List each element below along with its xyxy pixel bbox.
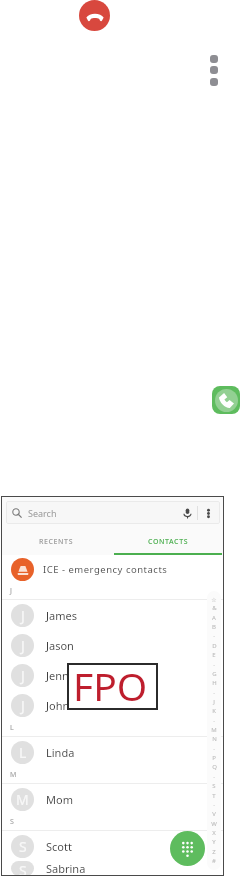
staticText: ·: [213, 745, 215, 753]
staticText: &: [212, 604, 217, 612]
staticText: ·: [213, 801, 215, 809]
button[interactable]: M: [1, 784, 224, 814]
staticText: ·: [213, 661, 215, 669]
staticText: M: [10, 770, 17, 780]
staticText: Search: [28, 507, 57, 519]
button[interactable]: Phone app: [212, 386, 240, 414]
staticText: P: [212, 754, 216, 762]
staticText: ·: [213, 689, 215, 697]
staticText: Y: [212, 838, 216, 846]
button[interactable]: CONTACTS: [112, 529, 224, 555]
button[interactable]: RECENTS: [1, 529, 112, 555]
staticText: John: [46, 698, 70, 713]
staticText: L: [19, 743, 27, 762]
staticText: James: [46, 608, 77, 623]
staticText: W: [211, 820, 217, 828]
staticText: CONTACTS: [148, 537, 189, 547]
staticText: J: [21, 696, 25, 715]
staticText: Sabrina: [46, 861, 86, 876]
staticText: Q: [212, 763, 217, 771]
staticText: E: [212, 651, 216, 659]
staticText: S: [212, 782, 216, 790]
button[interactable]: ICE - emergency contacts: [1, 555, 224, 583]
button[interactable]: More options: [198, 503, 218, 523]
button[interactable]: Search: [6, 501, 220, 524]
staticText: J: [21, 666, 25, 685]
staticText: Linda: [46, 745, 75, 760]
staticText: L: [10, 723, 14, 733]
staticText: Scott: [46, 839, 72, 854]
staticText: V: [212, 810, 216, 818]
staticText: A: [212, 614, 216, 622]
button[interactable]: S: [1, 831, 224, 861]
staticText: #: [212, 857, 216, 865]
button[interactable]: J: [1, 690, 224, 720]
staticText: J: [10, 586, 12, 596]
staticText: Z: [212, 848, 216, 856]
button[interactable]: J: [1, 660, 224, 690]
button[interactable]: Voice search: [177, 503, 197, 523]
button[interactable]: Alphabet index: [207, 591, 221, 870]
staticText: J: [213, 698, 215, 706]
staticText: Jennifer: [46, 668, 87, 683]
staticText: ·: [213, 632, 215, 640]
staticText: N: [212, 735, 217, 743]
staticText: J: [21, 636, 25, 655]
staticText: D: [212, 642, 217, 650]
button[interactable]: L: [1, 737, 224, 767]
staticText: X: [212, 829, 216, 837]
staticText: Mom: [46, 792, 73, 807]
staticText: S: [19, 837, 27, 856]
button[interactable]: J: [1, 630, 224, 660]
staticText: RECENTS: [39, 537, 74, 547]
button[interactable]: More options: [198, 44, 230, 76]
staticText: M: [211, 726, 217, 734]
staticText: ·: [213, 773, 215, 781]
staticText: ICE - emergency contacts: [43, 563, 168, 576]
staticText: K: [212, 707, 216, 715]
staticText: M: [16, 790, 29, 809]
button[interactable]: S: [1, 861, 224, 876]
staticText: ☆: [211, 596, 217, 603]
button[interactable]: End call: [79, 0, 110, 31]
staticText: H: [212, 679, 217, 687]
staticText: S: [19, 861, 27, 876]
staticText: FPO: [73, 659, 148, 706]
staticText: S: [10, 817, 14, 827]
staticText: B: [212, 623, 216, 631]
staticText: Jason: [46, 638, 74, 653]
button[interactable]: J: [1, 600, 224, 630]
staticText: G: [212, 670, 217, 678]
button[interactable]: Dialpad: [170, 831, 205, 866]
staticText: ·: [213, 717, 215, 725]
staticText: T: [212, 792, 216, 800]
staticText: J: [21, 606, 25, 625]
